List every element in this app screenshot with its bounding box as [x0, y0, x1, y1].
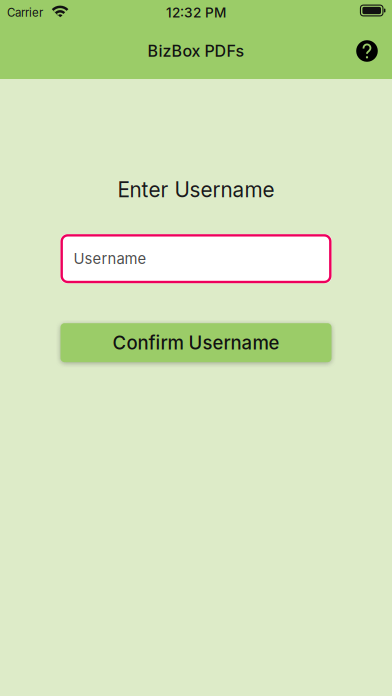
staticText: Username: [73, 250, 146, 268]
staticText: BizBox PDFs: [147, 41, 244, 61]
staticText: Carrier: [7, 6, 43, 19]
button[interactable]: Help: [345, 29, 389, 73]
staticText: Confirm Username: [112, 331, 279, 354]
button[interactable]: Confirm Username: [60, 323, 331, 362]
staticText: 12:32 PM: [166, 4, 226, 21]
button[interactable]: Username: [60, 234, 331, 283]
staticText: Enter Username: [117, 177, 274, 202]
